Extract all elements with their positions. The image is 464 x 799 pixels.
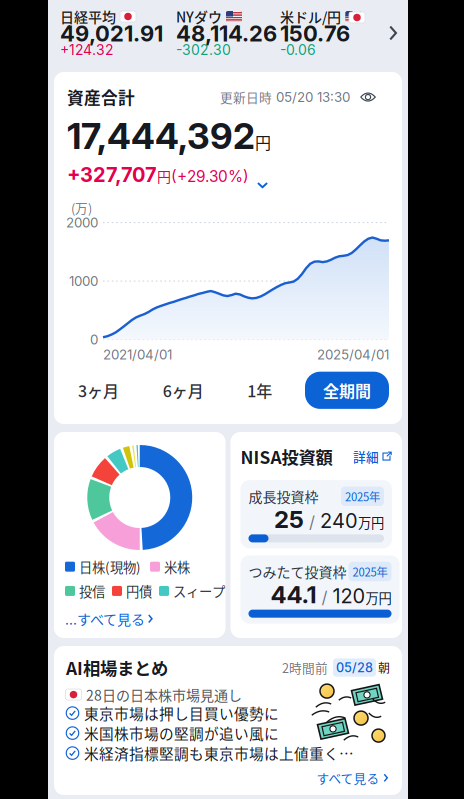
staticText: 米国株市場の堅調が追い風に [84,722,279,744]
staticText: 2000 [66,214,98,231]
staticText: -302.30 [176,41,231,58]
staticText: 円 [157,166,171,186]
button[interactable]: ...すべて見る [65,609,153,629]
staticText: ...すべて見る [65,609,145,629]
staticText: 2025/04/01 [317,347,389,363]
staticText: 150.76 [280,20,350,47]
staticText: 更新日時 [220,88,272,106]
staticText: 詳細 [353,447,379,466]
staticText: 全期間 [323,379,371,402]
staticText: 49,021.91 [60,20,163,47]
staticText: 万円 [358,513,384,532]
staticText: 日経平均 [60,6,116,27]
staticText: 05/20 13:30 [272,89,350,105]
staticText: 6ヶ月 [163,379,204,402]
button[interactable]: 6ヶ月 [152,372,215,409]
staticText: 2025年 [345,488,380,504]
staticText: 0 [90,331,98,348]
button[interactable]: 全期間 [305,372,389,409]
staticText: スィープ [173,581,225,601]
staticText: (+29.30%) [171,167,249,186]
staticText: すべて見る [317,769,380,787]
staticText: 米経済指標堅調も東京市場は上値重く… [84,742,354,764]
staticText: 東京市場は押し目買い優勢に [84,702,279,724]
button[interactable]: 詳細 [353,447,392,466]
staticText: つみたて投資枠 [248,561,346,582]
staticText: 25 [274,505,304,534]
staticText: 3ヶ月 [78,379,119,402]
staticText: 2時間前 [282,658,328,677]
staticText: 成長投資枠 [248,486,318,506]
staticText: 2021/04/01 [103,347,172,363]
staticText: 日株(現物) [79,557,141,576]
staticText: 投信 [79,581,105,601]
staticText: 円 [255,130,271,154]
staticText: 120 [332,584,365,608]
staticText: (万) [71,198,92,216]
staticText: +327,707 [67,163,157,187]
button[interactable]: +327,707 [67,163,389,188]
staticText: / [316,587,332,607]
staticText: 円債 [126,581,152,601]
staticText: AI相場まとめ [66,655,168,680]
staticText: 1000 [69,273,98,289]
staticText: 資産合計 [67,85,135,109]
staticText: 44.1 [270,580,316,609]
staticText: 28日の日本株市場見通し [86,684,242,705]
staticText: NISA投資額 [240,444,332,469]
button[interactable]: すべて見る [317,769,390,787]
staticText: 米株 [164,557,190,576]
staticText: 米ドル/円 [280,6,341,27]
button[interactable]: 3ヶ月 [67,372,130,409]
button[interactable]: 資産を隠す [350,91,389,103]
staticText: 05/28 [336,660,373,675]
staticText: 17,444,392 [67,114,255,158]
staticText: 1年 [247,379,272,402]
staticText: NYダウ [176,6,222,27]
staticText: 48,114.26 [176,20,277,47]
staticText: -0.06 [280,41,316,58]
staticText: +124.32 [60,41,114,58]
staticText: 万円 [365,588,391,607]
staticText: / [304,512,320,532]
button[interactable]: 1年 [236,372,283,409]
staticText: 2025年 [352,563,387,580]
staticText: 朝 [378,659,390,676]
button[interactable]: 日経平均 [48,0,408,66]
staticText: 240 [320,509,358,533]
